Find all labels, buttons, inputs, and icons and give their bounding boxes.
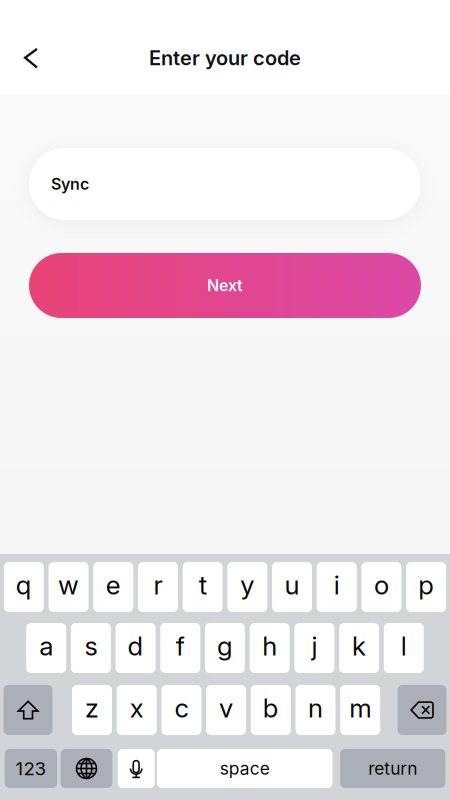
staticText: h: [262, 630, 277, 662]
button[interactable]: p: [406, 562, 446, 612]
button[interactable]: m: [340, 685, 380, 735]
button[interactable]: r: [138, 562, 178, 612]
button[interactable]: i: [317, 562, 357, 612]
staticText: t: [199, 569, 207, 601]
button[interactable]: a: [26, 623, 66, 673]
button[interactable]: c: [161, 685, 201, 735]
staticText: return: [368, 758, 417, 779]
button[interactable]: w: [48, 562, 88, 612]
staticText: k: [352, 630, 366, 662]
staticText: Sync: [51, 174, 89, 194]
staticText: l: [401, 630, 407, 662]
button[interactable]: u: [272, 562, 312, 612]
button[interactable]: y: [227, 562, 267, 612]
button[interactable]: n: [295, 685, 335, 735]
staticText: o: [374, 569, 389, 601]
button[interactable]: s: [71, 623, 111, 673]
staticText: b: [263, 692, 279, 724]
button[interactable]: Back: [12, 37, 50, 79]
staticText: g: [217, 630, 233, 662]
staticText: m: [349, 692, 371, 724]
staticText: u: [284, 569, 299, 601]
button[interactable]: Delete: [397, 685, 446, 735]
button[interactable]: d: [116, 623, 156, 673]
button[interactable]: space: [157, 749, 332, 788]
staticText: q: [16, 569, 32, 601]
button[interactable]: t: [183, 562, 223, 612]
button[interactable]: g: [205, 623, 245, 673]
button[interactable]: l: [384, 623, 424, 673]
button[interactable]: 123: [5, 749, 57, 788]
button[interactable]: Next keyboard: [61, 749, 112, 788]
button[interactable]: Shift: [3, 685, 52, 735]
staticText: a: [39, 630, 53, 662]
button[interactable]: Next: [29, 253, 421, 318]
staticText: Next: [207, 276, 243, 295]
button[interactable]: Sync: [29, 148, 421, 220]
staticText: e: [106, 569, 121, 601]
staticText: p: [418, 569, 434, 601]
button[interactable]: h: [250, 623, 290, 673]
button[interactable]: q: [4, 562, 44, 612]
button[interactable]: return: [340, 749, 445, 788]
staticText: Enter your code: [149, 46, 301, 70]
staticText: j: [311, 630, 317, 662]
staticText: c: [174, 692, 188, 724]
staticText: n: [308, 692, 323, 724]
staticText: x: [130, 692, 144, 724]
button[interactable]: z: [72, 685, 112, 735]
staticText: r: [153, 569, 162, 601]
button[interactable]: f: [160, 623, 200, 673]
staticText: w: [58, 569, 79, 601]
staticText: z: [85, 692, 99, 724]
staticText: d: [128, 630, 144, 662]
button[interactable]: o: [361, 562, 401, 612]
staticText: f: [176, 630, 185, 662]
staticText: s: [84, 630, 97, 662]
staticText: i: [334, 569, 340, 601]
button[interactable]: b: [251, 685, 291, 735]
button[interactable]: e: [93, 562, 133, 612]
staticText: space: [220, 758, 270, 779]
staticText: v: [219, 692, 233, 724]
staticText: 123: [15, 757, 46, 780]
button[interactable]: v: [206, 685, 246, 735]
button[interactable]: Dictate: [118, 749, 155, 788]
button[interactable]: j: [294, 623, 334, 673]
staticText: y: [240, 569, 254, 601]
button[interactable]: k: [339, 623, 379, 673]
button[interactable]: x: [117, 685, 157, 735]
